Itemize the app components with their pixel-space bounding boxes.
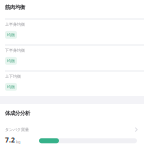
staticText: 体成分分析 [5,110,30,117]
staticText: 7.2 [5,135,15,144]
staticText: 均衡 [7,32,15,37]
button[interactable]: 上半身均衡 [0,20,144,44]
button[interactable]: 上下均衡 [0,72,144,96]
staticText: 均衡 [7,58,15,63]
staticText: 筋肉均衡 [5,4,25,11]
staticText: kg [16,139,20,144]
staticText: 均衡 [7,84,15,89]
button[interactable]: タンパク質量 [0,127,144,144]
staticText: 上半身均衡 [5,22,25,27]
staticText: タンパク質量 [5,127,29,132]
button[interactable]: 下半身均衡 [0,46,144,70]
staticText: 上下均衡 [5,74,21,79]
staticText: 下半身均衡 [5,48,25,53]
